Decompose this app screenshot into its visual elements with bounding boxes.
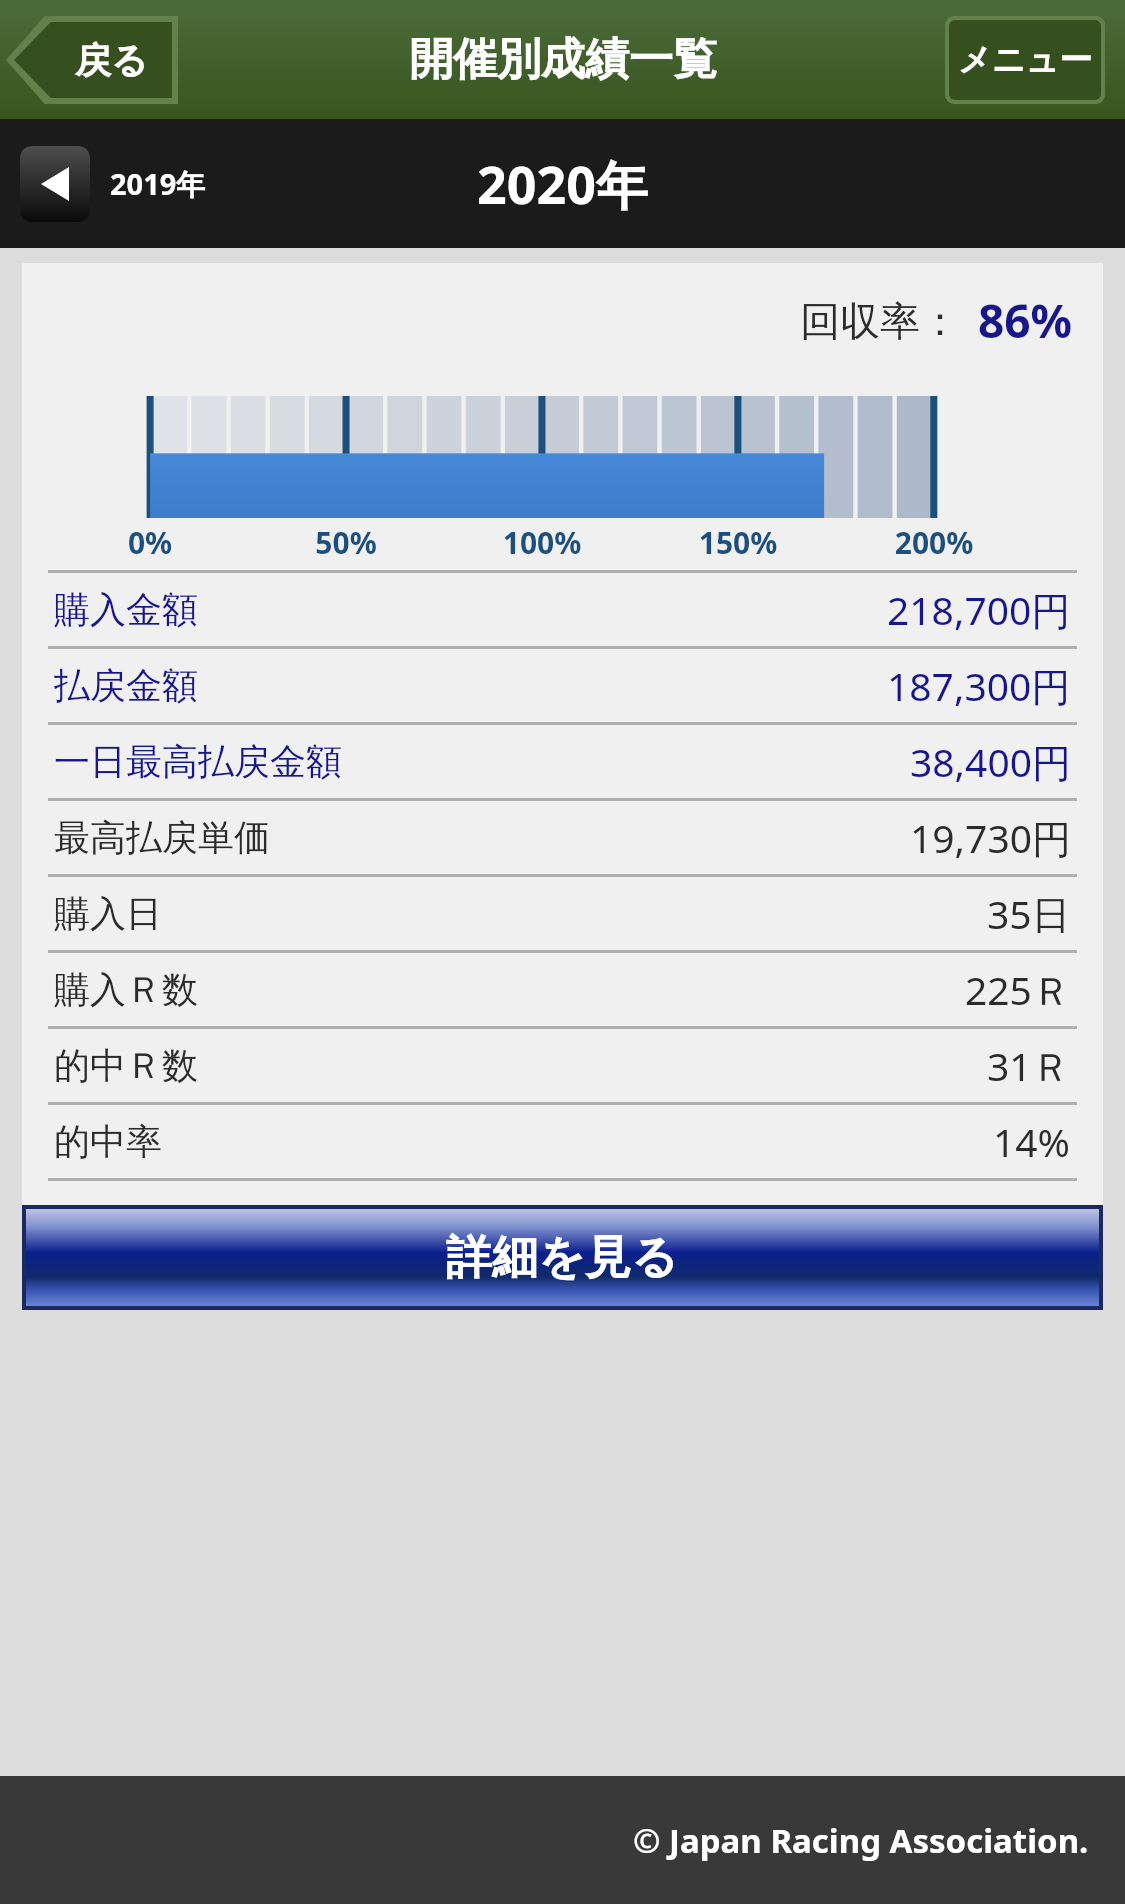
button[interactable]: 購入Ｒ数: [54, 953, 1071, 1026]
staticText: 0%: [80, 522, 220, 563]
staticText: 回収率：: [800, 296, 960, 346]
staticText: 的中率: [54, 1119, 162, 1164]
staticText: 14%: [993, 1115, 1071, 1168]
staticText: 購入金額: [54, 587, 198, 632]
staticText: 2019年: [110, 164, 206, 204]
staticText: 50%: [276, 522, 416, 563]
staticText: 19,730円: [910, 811, 1071, 864]
staticText: 35日: [987, 887, 1071, 940]
button[interactable]: 戻る: [6, 16, 184, 104]
staticText: 詳細を見る: [446, 1229, 679, 1287]
staticText: 戻る: [75, 38, 148, 83]
button[interactable]: 購入日: [54, 877, 1071, 950]
staticText: 2020年: [477, 148, 648, 219]
staticText: © Japan Racing Association.: [633, 1818, 1089, 1863]
staticText: 200%: [864, 522, 1004, 563]
staticText: 31Ｒ: [987, 1039, 1071, 1092]
button[interactable]: 購入金額: [54, 573, 1071, 646]
staticText: 218,700円: [887, 583, 1071, 636]
button[interactable]: 前の年: [20, 146, 206, 222]
button[interactable]: 的中率: [54, 1105, 1071, 1178]
button[interactable]: 払戻金額: [54, 649, 1071, 722]
staticText: 225Ｒ: [965, 963, 1071, 1016]
staticText: 開催別成績一覧: [409, 32, 717, 87]
staticText: 最高払戻単価: [54, 815, 270, 860]
staticText: 100%: [472, 522, 612, 563]
staticText: 購入日: [54, 891, 162, 936]
button[interactable]: 詳細を見る: [26, 1209, 1099, 1306]
other: 前の年: [20, 146, 90, 222]
staticText: 的中Ｒ数: [54, 1043, 198, 1088]
button[interactable]: 一日最高払戻金額: [54, 725, 1071, 798]
button[interactable]: 最高払戻単価: [54, 801, 1071, 874]
staticText: 購入Ｒ数: [54, 967, 198, 1012]
staticText: 払戻金額: [54, 663, 198, 708]
staticText: 150%: [668, 522, 808, 563]
staticText: 38,400円: [910, 735, 1071, 788]
staticText: メニュー: [958, 39, 1093, 81]
staticText: 一日最高払戻金額: [54, 739, 342, 784]
staticText: 86%: [978, 289, 1073, 352]
button[interactable]: メニュー: [949, 20, 1101, 100]
staticText: 187,300円: [887, 659, 1071, 712]
button[interactable]: 的中Ｒ数: [54, 1029, 1071, 1102]
